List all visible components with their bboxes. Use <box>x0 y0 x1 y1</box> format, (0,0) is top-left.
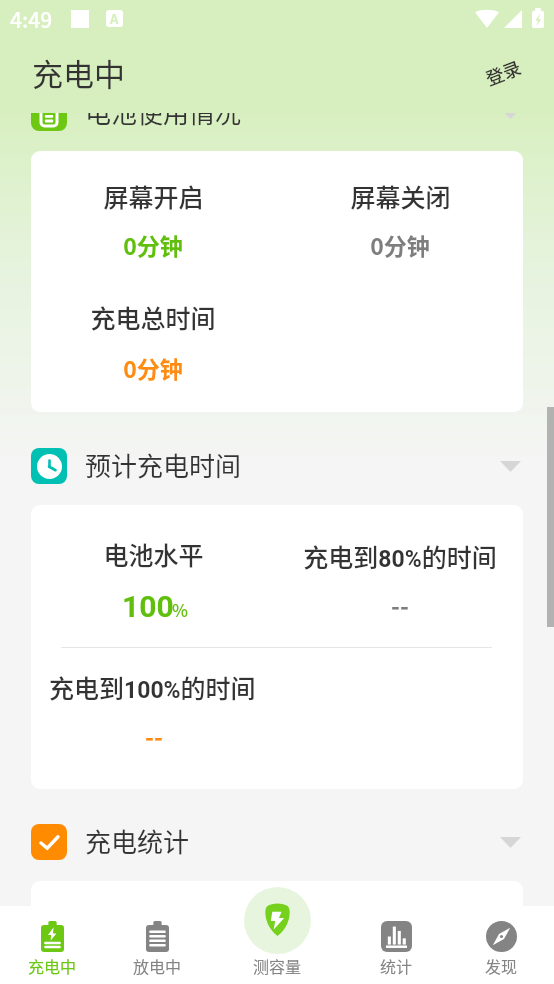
staticText: -- <box>145 718 163 753</box>
staticText: A <box>110 10 119 26</box>
button[interactable]: 登录 <box>473 48 533 96</box>
button[interactable]: 充电统计 <box>0 817 554 867</box>
staticText: 统计 <box>380 954 413 977</box>
staticText: 发现 <box>485 954 518 977</box>
staticText: 登录 <box>481 53 524 91</box>
staticText: 测容量 <box>253 954 302 977</box>
staticText: 0分钟 <box>123 228 183 261</box>
staticText: 0分钟 <box>370 228 430 261</box>
button[interactable]: 测容量 <box>210 884 344 984</box>
button[interactable]: 发现 <box>449 906 554 984</box>
staticText: 充电到100%的时间 <box>49 669 256 705</box>
button[interactable]: 统计 <box>344 906 449 984</box>
staticText: 充电中 <box>32 50 125 95</box>
button[interactable]: 预计充电时间 <box>0 441 554 491</box>
staticText: % <box>172 597 188 622</box>
staticText: 4:49 <box>10 4 53 34</box>
button[interactable]: 电池使用情况 <box>0 88 554 138</box>
staticText: 充电统计 <box>85 822 190 860</box>
staticText: 充电到80%的时间 <box>303 538 497 574</box>
staticText: 100 <box>122 589 174 624</box>
staticText: 电池水平 <box>103 536 204 572</box>
staticText: 放电中 <box>133 954 182 977</box>
staticText: 充电中 <box>28 954 77 977</box>
staticText: 屏幕开启 <box>103 178 204 214</box>
button[interactable]: Collapse 电池使用情况 <box>489 91 533 135</box>
button[interactable]: 充电中 <box>0 906 105 984</box>
staticText: -- <box>391 587 409 622</box>
button[interactable]: Collapse 充电统计 <box>489 820 533 864</box>
staticText: 0分钟 <box>123 351 183 384</box>
button[interactable]: 放电中 <box>105 906 210 984</box>
button[interactable]: Collapse 预计充电时间 <box>489 444 533 488</box>
staticText: 充电总时间 <box>90 299 216 335</box>
staticText: 预计充电时间 <box>85 446 242 484</box>
staticText: 电池使用情况 <box>85 93 242 131</box>
staticText: 屏幕关闭 <box>350 178 451 214</box>
